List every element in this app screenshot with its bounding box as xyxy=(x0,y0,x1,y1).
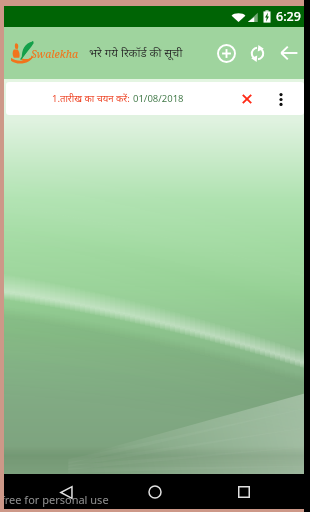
button[interactable]: Back xyxy=(52,478,80,506)
staticText: भरे गये रिकॉर्ड की सूची xyxy=(89,45,183,61)
staticText: Swalekha xyxy=(31,47,78,61)
button[interactable]: Delete xyxy=(236,88,258,110)
button[interactable]: Home xyxy=(141,478,169,506)
button[interactable]: More options xyxy=(270,88,292,110)
button[interactable]: Back xyxy=(274,38,304,68)
button[interactable]: 1.तारीख का चयन करें: xyxy=(6,82,304,115)
button[interactable]: Recents xyxy=(230,478,258,506)
staticText: 01/08/2018 xyxy=(133,92,184,105)
staticText: free for personal use xyxy=(1,492,109,507)
staticText: 1.तारीख का चयन करें: xyxy=(52,92,133,105)
button[interactable]: Refresh xyxy=(242,38,272,68)
staticText: 6:29 xyxy=(276,8,301,25)
button[interactable]: Add record xyxy=(211,38,241,68)
